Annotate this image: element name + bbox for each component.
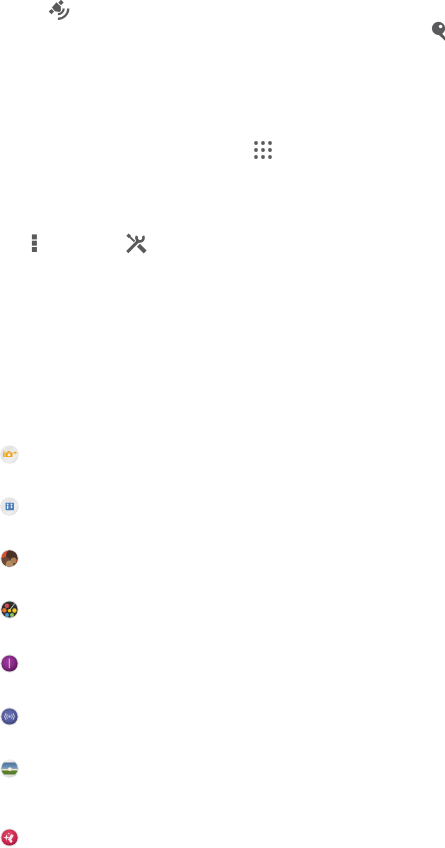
other: GPS <box>48 0 72 22</box>
other: VPN key <box>428 18 445 42</box>
button[interactable]: All apps <box>253 140 274 161</box>
button[interactable]: Landscape photo <box>0 759 19 778</box>
button[interactable]: Music <box>0 654 19 673</box>
button[interactable]: Gallery photo <box>0 549 19 568</box>
button[interactable]: Tools <box>124 230 150 256</box>
button[interactable]: More options <box>28 231 48 251</box>
button[interactable]: Contacts <box>0 497 19 516</box>
button[interactable]: Sketch <box>0 600 19 619</box>
button[interactable]: Camera <box>0 445 19 464</box>
button[interactable]: Effects <box>0 828 19 847</box>
button[interactable]: Radio <box>0 707 19 726</box>
